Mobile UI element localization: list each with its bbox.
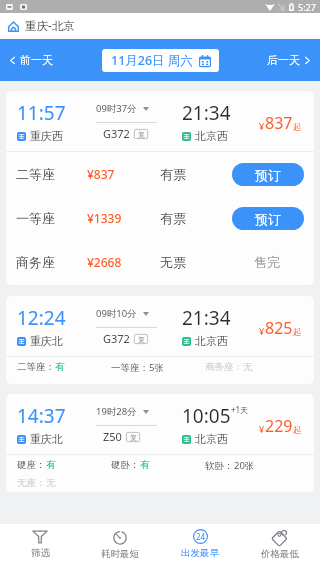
staticText: 有 <box>46 459 56 471</box>
staticText: 20张 <box>234 459 255 472</box>
staticText: 预订 <box>255 167 281 183</box>
staticText: 一等座： <box>111 362 149 374</box>
staticText: 重庆北 <box>30 334 63 348</box>
staticText: 起 <box>293 327 302 338</box>
staticText: 北京西 <box>195 334 228 348</box>
staticText: Z50 <box>103 429 122 444</box>
staticText: 无座： <box>17 477 46 489</box>
staticText: 有票 <box>160 210 186 226</box>
staticText: 起 <box>293 122 302 133</box>
button[interactable]: 后一天 <box>263 49 316 71</box>
staticText: 11月26日 周六 <box>111 52 193 69</box>
button[interactable]: 预订 <box>232 163 304 186</box>
staticText: 重庆北 <box>30 432 63 446</box>
staticText: 前一天 <box>20 53 53 67</box>
staticText: 重庆-北京 <box>25 18 75 34</box>
button[interactable]: 24 <box>160 524 240 569</box>
button[interactable]: 耗时最短 <box>80 524 160 569</box>
staticText: 5张 <box>149 361 164 374</box>
staticText: 商务座 <box>16 254 55 270</box>
staticText: 无票 <box>160 254 186 270</box>
staticText: 二等座： <box>17 361 55 373</box>
staticText: 售完 <box>254 254 280 270</box>
staticText: 硬卧： <box>111 459 140 471</box>
button[interactable]: 11:57 <box>6 91 314 285</box>
staticText: 12:24 <box>17 305 66 331</box>
staticText: 19时28分 <box>96 405 137 418</box>
button[interactable]: 14:37 <box>6 394 314 492</box>
button[interactable]: 预订 <box>232 207 304 230</box>
staticText: 筛选 <box>31 547 50 559</box>
staticText: 10:05 <box>182 403 231 429</box>
staticText: 14:37 <box>17 403 66 429</box>
staticText: 软卧： <box>205 460 234 472</box>
staticText: 北京西 <box>195 129 228 143</box>
staticText: 复 <box>138 130 145 139</box>
staticText: 有 <box>55 361 65 373</box>
staticText: 无 <box>46 477 56 489</box>
staticText: ¥2668 <box>87 254 122 270</box>
staticText: 复 <box>130 433 137 442</box>
staticText: ¥ <box>259 325 265 337</box>
staticText: 二等座 <box>16 166 55 182</box>
other: Home <box>8 21 19 32</box>
staticText: 09时37分 <box>96 102 137 115</box>
staticText: 229 <box>265 415 293 437</box>
button[interactable]: 筛选 <box>0 524 80 569</box>
staticText: 出发最早 <box>181 547 219 559</box>
button[interactable]: 前一天 <box>4 49 57 71</box>
staticText: 商务座： <box>205 361 243 373</box>
staticText: 有票 <box>160 166 186 182</box>
staticText: G372 <box>103 126 130 141</box>
staticText: 24 <box>196 531 206 542</box>
staticText: 825 <box>265 317 293 339</box>
button[interactable]: Home <box>7 18 76 34</box>
button[interactable]: 12:24 <box>6 296 314 384</box>
staticText: 837 <box>265 112 293 134</box>
button[interactable]: 11月26日 周六 <box>102 49 219 72</box>
staticText: 预订 <box>255 211 281 227</box>
staticText: 耗时最短 <box>101 548 139 560</box>
staticText: 09时10分 <box>96 307 137 320</box>
staticText: 一等座 <box>16 210 55 226</box>
staticText: 5:27 <box>298 1 316 13</box>
staticText: G372 <box>103 331 130 346</box>
staticText: ¥837 <box>87 166 115 182</box>
staticText: 复 <box>138 335 145 344</box>
staticText: 价格最低 <box>261 548 299 560</box>
staticText: 重庆西 <box>30 129 63 143</box>
staticText: +1天 <box>231 404 249 415</box>
staticText: 21:34 <box>182 305 231 331</box>
staticText: 起 <box>293 425 302 436</box>
staticText: ¥ <box>259 120 265 132</box>
button[interactable]: 价格最低 <box>240 524 320 569</box>
staticText: 11:57 <box>17 100 66 126</box>
staticText: 硬座： <box>17 459 46 471</box>
staticText: ¥1339 <box>87 210 122 226</box>
staticText: ¥ <box>259 423 265 435</box>
staticText: 后一天 <box>267 53 300 67</box>
staticText: 有 <box>140 459 150 471</box>
staticText: 北京西 <box>195 432 228 446</box>
staticText: 无 <box>243 361 253 373</box>
staticText: 21:34 <box>182 100 231 126</box>
